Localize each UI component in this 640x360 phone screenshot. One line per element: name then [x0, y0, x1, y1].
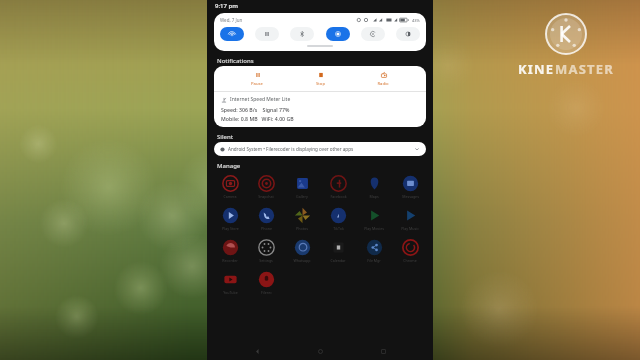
staticText: Photos: [296, 226, 308, 231]
staticText: Notifications: [217, 57, 254, 65]
button[interactable]: Pause: [237, 70, 277, 87]
button[interactable]: [396, 27, 420, 41]
button[interactable]: TikTok: [320, 207, 356, 231]
staticText: Silent: [217, 133, 234, 141]
staticText: TikTok: [333, 226, 344, 231]
staticText: Snapchat: [258, 194, 274, 199]
button[interactable]: Messages: [392, 175, 428, 199]
button[interactable]: Camera: [212, 175, 248, 199]
staticText: Maps: [369, 194, 379, 199]
staticText: Gallery: [296, 194, 308, 199]
button[interactable]: Stop: [300, 70, 340, 87]
staticText: Play Movies: [364, 226, 384, 231]
staticText: Internet Speed Meter Lite: [230, 96, 291, 103]
staticText: Calendar: [330, 258, 346, 263]
staticText: Radio: [377, 81, 389, 87]
staticText: Play Store: [222, 226, 239, 231]
staticText: Filerec: [261, 290, 272, 295]
button[interactable]: Photos: [284, 207, 320, 231]
button[interactable]: Recorder: [212, 239, 248, 263]
staticText: Camera: [223, 194, 237, 199]
button[interactable]: Play Music: [392, 207, 428, 231]
staticText: File Mgr: [367, 258, 381, 263]
staticText: Pause: [251, 81, 263, 87]
button[interactable]: Maps: [356, 175, 392, 199]
staticText: 43%: [412, 18, 420, 23]
button[interactable]: Snapchat: [248, 175, 284, 199]
button[interactable]: Chrome: [392, 239, 428, 263]
button[interactable]: Play Movies: [356, 207, 392, 231]
button[interactable]: Radio: [363, 70, 403, 87]
button[interactable]: File Mgr: [356, 239, 392, 263]
button[interactable]: Android System • Filerecoder is displayi…: [220, 146, 420, 152]
button[interactable]: Calendar: [320, 239, 356, 263]
button[interactable]: Home: [307, 342, 333, 360]
button[interactable]: Settings: [248, 239, 284, 263]
button[interactable]: [290, 27, 314, 41]
staticText: Messages: [402, 194, 419, 199]
button[interactable]: Recents: [370, 342, 396, 360]
staticText: MASTER: [555, 60, 614, 78]
button[interactable]: Phone: [248, 207, 284, 231]
staticText: Facebook: [330, 194, 347, 199]
staticText: Manage: [217, 162, 241, 170]
staticText: Settings: [259, 258, 273, 263]
staticText: Whatsapp: [293, 258, 311, 263]
staticText: 9:17 pm: [215, 2, 238, 10]
staticText: Mobile: 0.8 MB WiFi: 4.00 GB: [221, 115, 294, 122]
button[interactable]: Gallery: [284, 175, 320, 199]
button[interactable]: Whatsapp: [284, 239, 320, 263]
button[interactable]: Facebook: [320, 175, 356, 199]
button[interactable]: Filerec: [248, 271, 284, 295]
staticText: YouTube: [223, 290, 238, 295]
button[interactable]: Play Store: [212, 207, 248, 231]
staticText: Phone: [261, 226, 272, 231]
staticText: Recorder: [222, 258, 238, 263]
staticText: Chrome: [403, 258, 417, 263]
button[interactable]: [326, 27, 350, 41]
button[interactable]: YouTube: [212, 271, 248, 295]
button[interactable]: [255, 27, 279, 41]
button[interactable]: [220, 27, 244, 41]
button[interactable]: Back: [244, 342, 270, 360]
staticText: Speed: 306 B/s Signal 77%: [221, 106, 290, 113]
staticText: KINE: [518, 60, 555, 78]
staticText: Stop: [316, 81, 325, 87]
button[interactable]: [361, 27, 385, 41]
staticText: Play Music: [401, 226, 419, 231]
staticText: Android System • Filerecoder is displayi…: [228, 146, 354, 152]
staticText: Wed, 7 Jun: [220, 17, 243, 23]
